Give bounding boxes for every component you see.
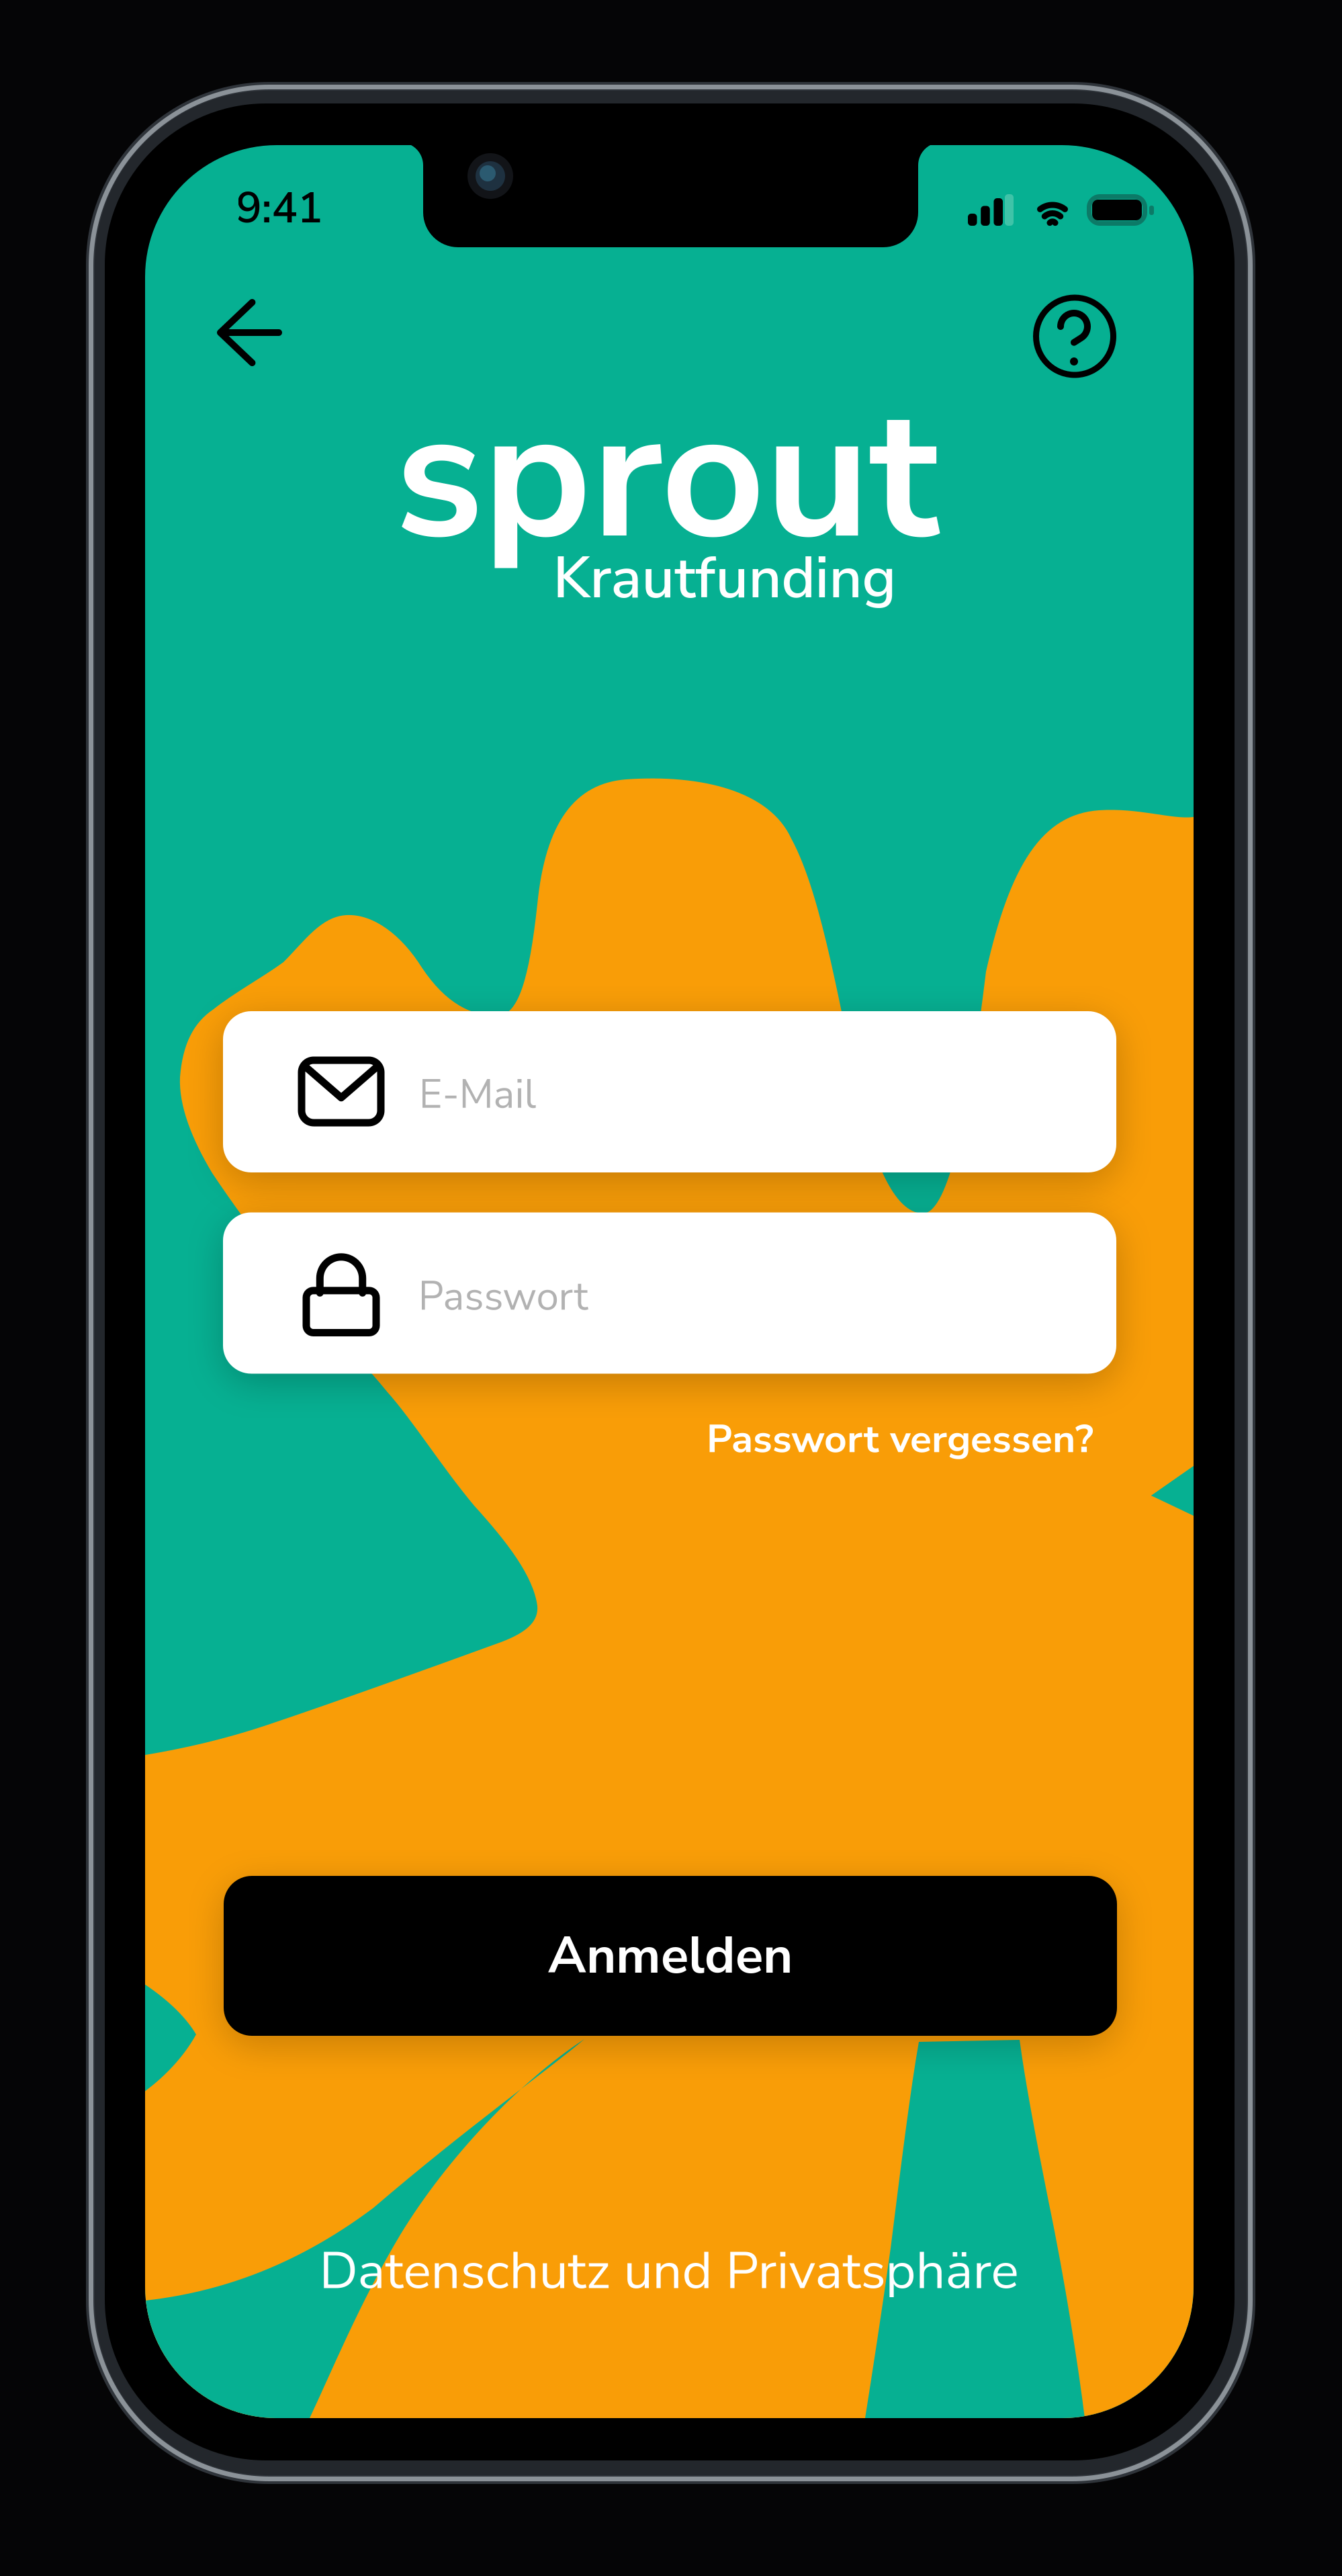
staticText: Anmelden — [548, 1921, 793, 1991]
staticText: E-Mail — [419, 1067, 536, 1122]
staticText: sprout — [395, 352, 939, 599]
staticText: Datenschutz und Privatsphäre — [319, 2236, 1019, 2306]
button[interactable]: Anmelden — [224, 1876, 1117, 2036]
button[interactable]: Datenschutz und Privatsphäre — [300, 2234, 1038, 2308]
staticText: Passwort — [418, 1269, 588, 1324]
button[interactable]: Help — [1016, 277, 1134, 396]
staticText: 9:41 — [236, 179, 323, 238]
staticText: Passwort vergessen? — [707, 1412, 1093, 1466]
button[interactable]: Back — [191, 273, 307, 392]
staticText: Krautfunding — [553, 539, 896, 618]
